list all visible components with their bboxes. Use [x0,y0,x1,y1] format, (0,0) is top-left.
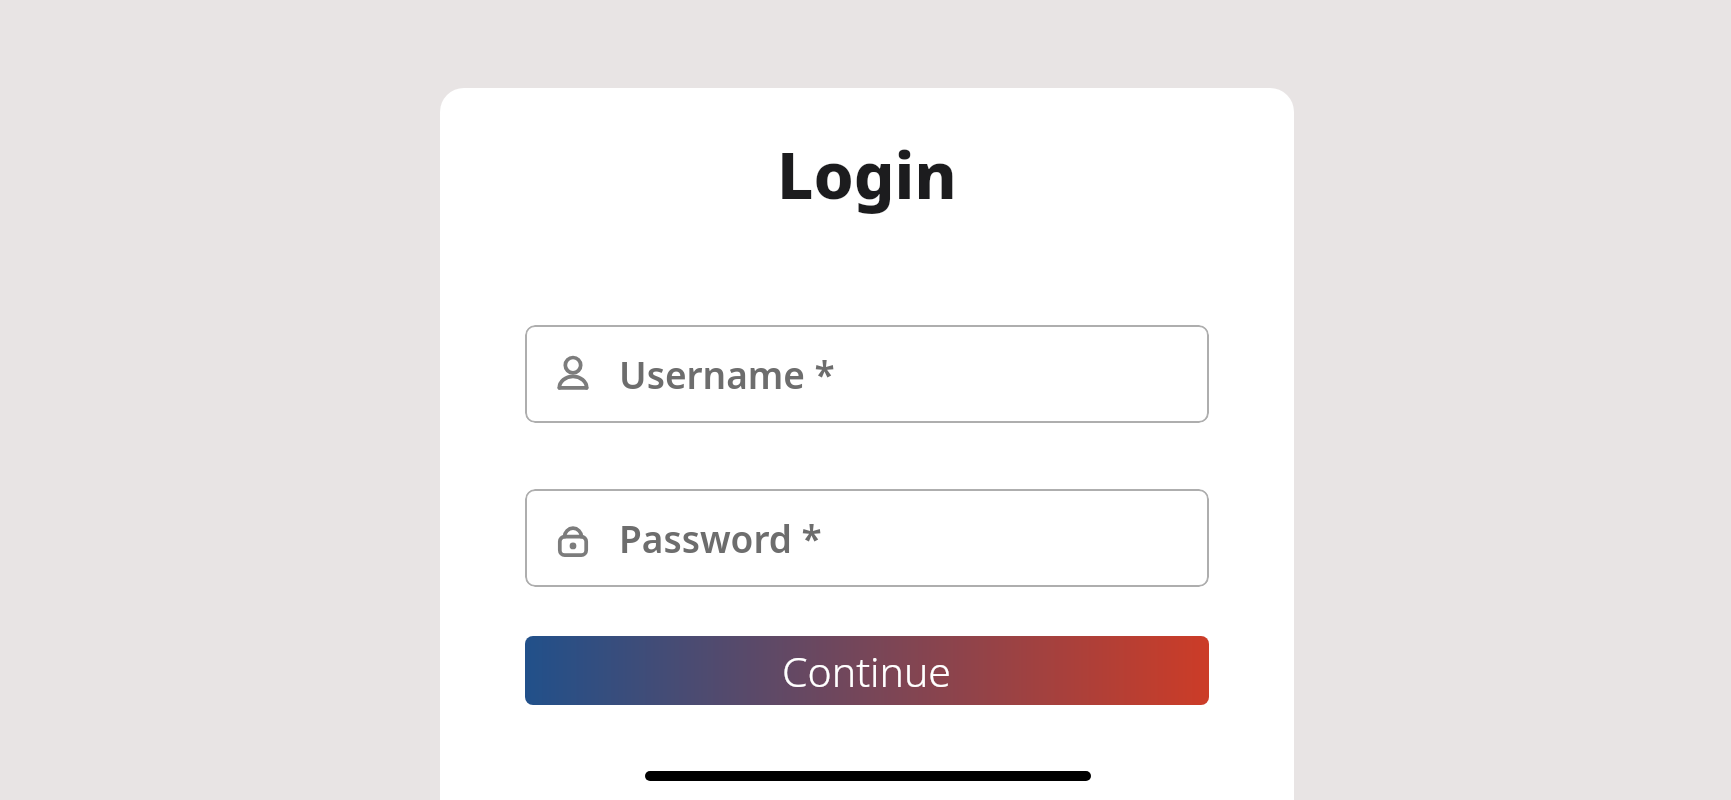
button[interactable]: Continue [525,636,1209,705]
staticText: Password * [619,513,822,563]
button[interactable]: Username [525,325,1209,423]
staticText: Continue [782,643,952,699]
other: Password [551,516,595,560]
staticText: Username * [619,349,835,399]
other: Username [551,352,595,396]
button[interactable]: Password [525,489,1209,587]
staticText: Login [777,131,957,218]
